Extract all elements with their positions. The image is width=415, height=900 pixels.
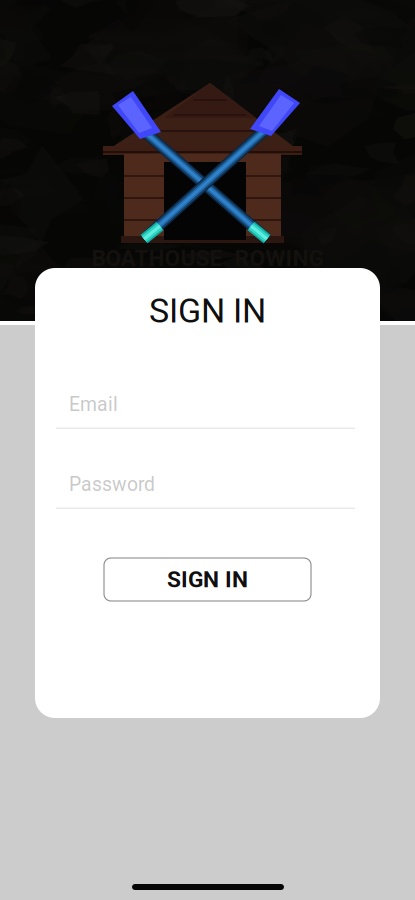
staticText: BOATHOUSE ROWING xyxy=(91,245,323,272)
staticText: SIGN IN xyxy=(167,566,248,593)
staticText: Password xyxy=(69,473,155,496)
button[interactable]: SIGN IN xyxy=(104,558,311,601)
staticText: Email xyxy=(69,393,118,416)
staticText: SIGN IN xyxy=(149,291,266,331)
